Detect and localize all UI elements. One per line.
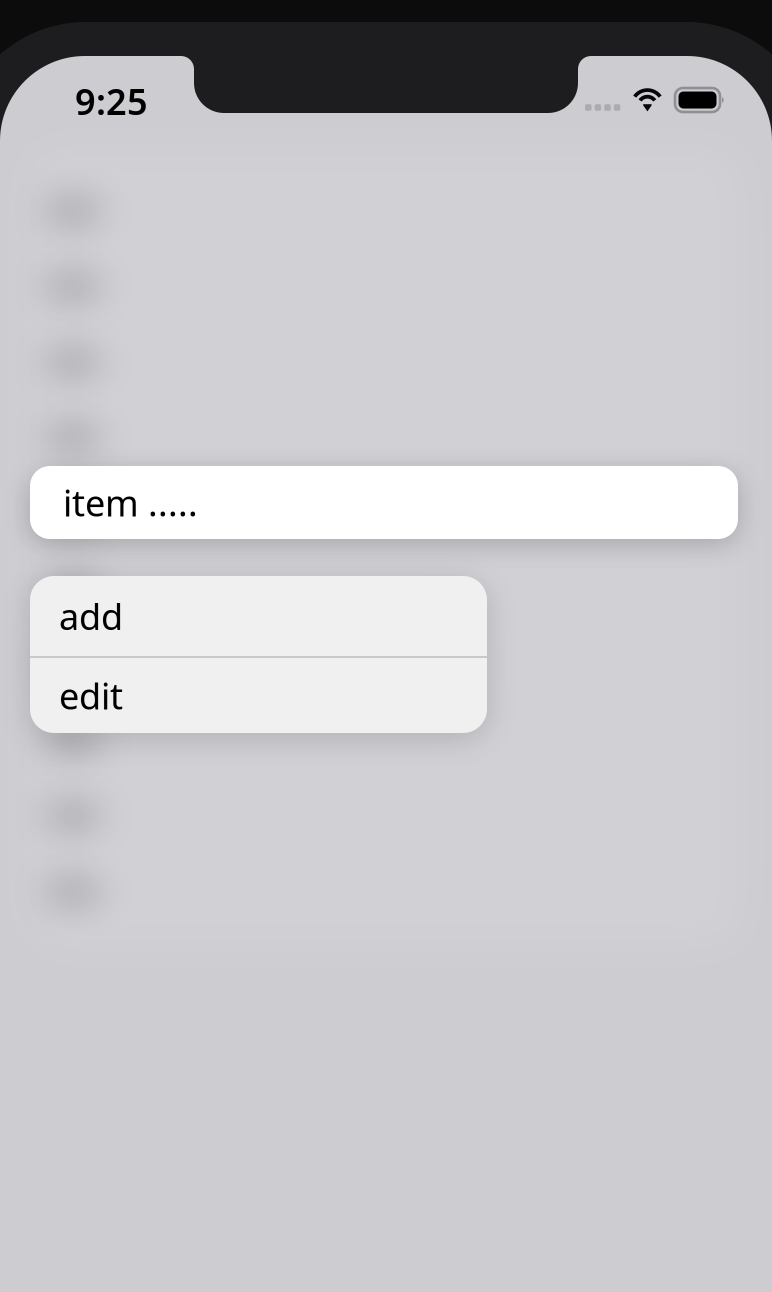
button[interactable]: add (30, 576, 487, 656)
staticText: item ..... (63, 479, 198, 526)
staticText: edit (59, 672, 123, 719)
button[interactable]: item ..... (30, 466, 738, 539)
staticText: 9:25 (75, 77, 148, 125)
staticText: add (59, 592, 123, 640)
button[interactable]: edit (30, 658, 487, 733)
